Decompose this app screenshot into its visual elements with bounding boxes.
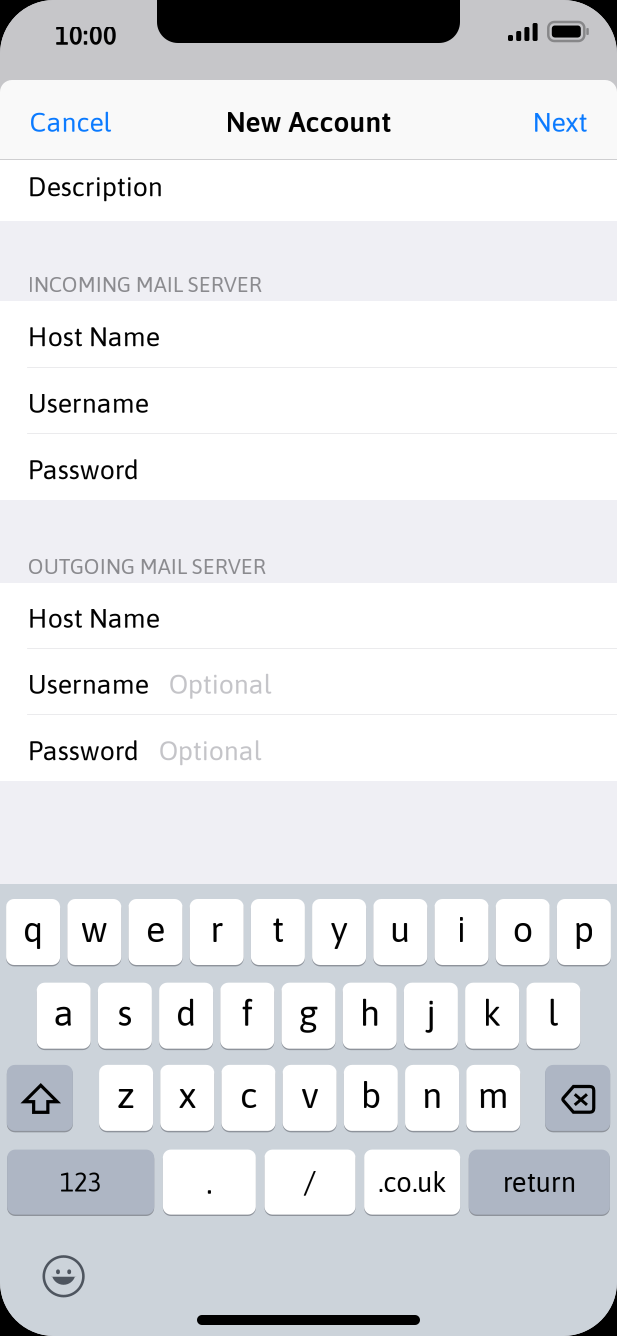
button[interactable]: j: [404, 983, 458, 1049]
staticText: u: [390, 908, 410, 950]
staticText: 10:00: [55, 21, 117, 50]
staticText: 123: [60, 1167, 102, 1197]
staticText: k: [483, 992, 502, 1033]
button[interactable]: z: [99, 1065, 153, 1131]
staticText: m: [478, 1074, 509, 1116]
staticText: v: [301, 1074, 318, 1116]
staticText: x: [179, 1074, 196, 1116]
staticText: w: [81, 908, 108, 950]
button[interactable]: Password: [0, 715, 617, 781]
button[interactable]: .co.uk: [364, 1150, 460, 1215]
staticText: OUTGOING MAIL SERVER: [28, 554, 266, 578]
button[interactable]: g: [281, 983, 335, 1049]
staticText: New Account: [225, 106, 391, 138]
button[interactable]: c: [221, 1065, 275, 1131]
staticText: Username: [28, 669, 149, 699]
button[interactable]: u: [373, 899, 427, 965]
button[interactable]: k: [465, 983, 519, 1049]
staticText: Optional: [169, 669, 272, 699]
button[interactable]: s: [98, 983, 152, 1049]
staticText: Username: [28, 388, 149, 418]
button[interactable]: Description: [0, 160, 617, 221]
staticText: n: [422, 1074, 442, 1116]
staticText: j: [426, 992, 436, 1033]
button[interactable]: Cancel: [16, 93, 124, 151]
button[interactable]: i: [434, 899, 488, 965]
staticText: z: [117, 1074, 135, 1116]
staticText: h: [360, 992, 380, 1033]
staticText: Cancel: [29, 107, 111, 137]
button[interactable]: return: [469, 1150, 610, 1215]
staticText: Host Name: [28, 603, 160, 633]
staticText: d: [176, 992, 196, 1033]
staticText: Password: [28, 454, 139, 485]
button[interactable]: /: [264, 1150, 355, 1215]
staticText: Description: [28, 171, 163, 202]
staticText: b: [361, 1074, 381, 1116]
button[interactable]: q: [6, 899, 60, 965]
button[interactable]: 123: [7, 1150, 154, 1215]
button[interactable]: Emoji keyboard: [40, 1252, 88, 1300]
staticText: g: [298, 992, 318, 1033]
button[interactable]: Next: [519, 93, 600, 151]
button[interactable]: Delete: [545, 1065, 610, 1131]
button[interactable]: v: [283, 1065, 337, 1131]
button[interactable]: p: [557, 899, 611, 965]
staticText: Host Name: [28, 321, 160, 352]
button[interactable]: h: [343, 983, 397, 1049]
button[interactable]: Shift: [7, 1065, 73, 1131]
button[interactable]: Username: [0, 368, 617, 433]
staticText: q: [23, 908, 43, 950]
staticText: s: [117, 992, 132, 1033]
staticText: f: [241, 992, 253, 1033]
button[interactable]: l: [526, 983, 580, 1049]
button[interactable]: w: [67, 899, 121, 965]
staticText: i: [456, 908, 466, 950]
button[interactable]: y: [312, 899, 366, 965]
button[interactable]: Host Name: [0, 583, 617, 648]
button[interactable]: f: [220, 983, 274, 1049]
staticText: .: [206, 1164, 212, 1200]
button[interactable]: Username: [0, 649, 617, 714]
staticText: y: [331, 908, 348, 950]
button[interactable]: x: [160, 1065, 214, 1131]
staticText: t: [272, 908, 284, 950]
staticText: return: [503, 1166, 576, 1198]
staticText: Next: [532, 107, 587, 137]
button[interactable]: r: [190, 899, 244, 965]
button[interactable]: .: [163, 1150, 256, 1215]
staticText: /: [303, 1164, 317, 1200]
staticText: INCOMING MAIL SERVER: [28, 272, 262, 296]
button[interactable]: m: [466, 1065, 520, 1131]
staticText: e: [146, 908, 165, 950]
button[interactable]: n: [405, 1065, 459, 1131]
button[interactable]: Password: [0, 434, 617, 500]
button[interactable]: Host Name: [0, 301, 617, 367]
button[interactable]: d: [159, 983, 213, 1049]
staticText: o: [513, 908, 533, 950]
staticText: .co.uk: [378, 1166, 446, 1198]
staticText: r: [210, 908, 223, 950]
staticText: c: [240, 1074, 257, 1116]
staticText: Optional: [159, 735, 262, 766]
staticText: Password: [28, 735, 139, 766]
staticText: p: [573, 908, 594, 950]
staticText: a: [54, 992, 74, 1033]
button[interactable]: a: [37, 983, 91, 1049]
button[interactable]: t: [251, 899, 305, 965]
button[interactable]: e: [128, 899, 182, 965]
staticText: l: [548, 992, 559, 1033]
button[interactable]: b: [344, 1065, 398, 1131]
button[interactable]: o: [496, 899, 550, 965]
